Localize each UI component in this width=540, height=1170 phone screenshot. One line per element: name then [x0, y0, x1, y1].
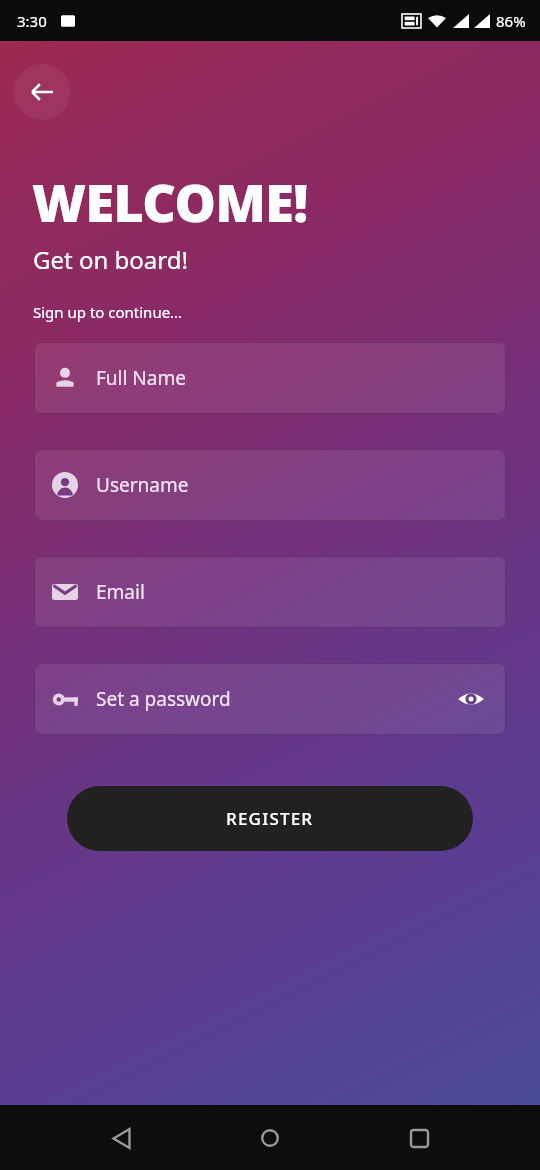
button[interactable]: Username [34, 449, 506, 521]
button[interactable]: Recents [391, 1110, 447, 1166]
button[interactable]: Full Name [34, 342, 506, 414]
button[interactable]: Set a password [34, 663, 506, 735]
staticText: 3:30 [17, 11, 47, 31]
staticText: WELCOME! [32, 166, 308, 237]
staticText: Full Name [96, 365, 488, 391]
staticText: Username [96, 472, 488, 498]
staticText: Email [96, 579, 488, 605]
button[interactable]: Home [242, 1110, 298, 1166]
staticText: Set a password [96, 686, 454, 712]
button[interactable]: REGISTER [67, 786, 473, 851]
staticText: 86% [496, 11, 526, 31]
button[interactable]: Back [14, 64, 70, 120]
staticText: Get on board! [33, 243, 188, 276]
button[interactable]: Back [93, 1110, 149, 1166]
button[interactable]: Show password [454, 682, 488, 716]
staticText: REGISTER [226, 807, 314, 830]
staticText: Sign up to continue… [33, 302, 182, 322]
button[interactable]: Email [34, 556, 506, 628]
